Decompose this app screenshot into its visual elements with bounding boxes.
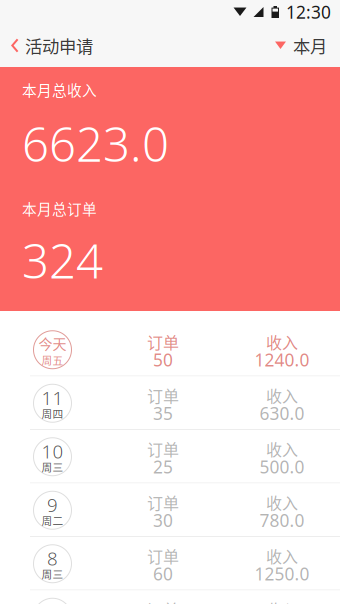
button[interactable]: 11 [0, 376, 340, 430]
button[interactable]: 7 [0, 590, 340, 604]
staticText: 500.0 [259, 455, 304, 478]
staticText: 收入 [266, 544, 298, 567]
staticText: 周五 [41, 352, 63, 367]
staticText: 周三 [41, 566, 63, 581]
staticText: 35 [153, 401, 173, 425]
button[interactable]: 今天 [0, 323, 340, 376]
staticText: 订单 [147, 544, 179, 567]
staticText: 10 [41, 438, 63, 464]
staticText: 6623.0 [22, 111, 169, 176]
staticText: 8 [47, 545, 58, 571]
staticText: 今天 [38, 333, 66, 353]
staticText: 收入 [266, 491, 298, 514]
staticText: 12:30 [286, 0, 331, 24]
button[interactable]: 本月 [275, 22, 340, 69]
staticText: 周二 [41, 512, 63, 528]
staticText: 订单 [147, 384, 179, 407]
button[interactable]: 8 [0, 537, 340, 590]
staticText: 324 [22, 228, 103, 292]
staticText: 收入 [266, 437, 298, 460]
staticText: 订单 [147, 437, 179, 460]
staticText: 订单 [147, 330, 179, 353]
button[interactable]: 10 [0, 430, 340, 483]
staticText: 50 [153, 348, 173, 371]
staticText: 收入 [266, 598, 298, 604]
staticText: 9 [47, 492, 58, 517]
staticText: 630.0 [259, 401, 304, 425]
button[interactable]: 活动申请 [0, 22, 93, 69]
staticText: 订单 [147, 491, 179, 514]
staticText: 11 [41, 385, 63, 410]
staticText: 周四 [41, 405, 63, 421]
staticText: 60 [153, 562, 173, 585]
staticText: 1240.0 [254, 348, 309, 371]
staticText: 周三 [41, 459, 63, 474]
staticText: 25 [153, 455, 173, 478]
staticText: 本月 [293, 33, 327, 58]
staticText: 活动申请 [25, 33, 93, 58]
staticText: 订单 [147, 598, 179, 604]
staticText: 收入 [266, 384, 298, 407]
staticText: 本月总订单 [22, 198, 97, 219]
button[interactable]: 9 [0, 483, 340, 537]
staticText: 1250.0 [254, 562, 309, 585]
staticText: 780.0 [259, 508, 304, 532]
staticText: 30 [153, 508, 173, 532]
staticText: 本月总收入 [22, 79, 97, 100]
staticText: 收入 [266, 330, 298, 353]
